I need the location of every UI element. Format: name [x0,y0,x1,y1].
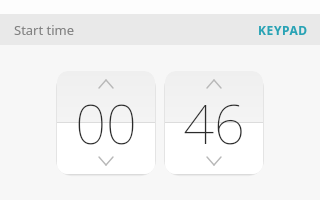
button[interactable]: Increase Minutes [201,75,227,93]
button[interactable]: Decrease Minutes [201,152,227,170]
button[interactable]: Increase Hours [93,75,119,93]
staticText: 00 [56,86,156,160]
staticText: KEYPAD [258,22,308,38]
button[interactable]: Decrease Hours [93,152,119,170]
button[interactable]: Increase Hours [56,70,156,175]
staticText: 46 [164,86,264,160]
staticText: Start time [14,21,75,39]
button[interactable]: Increase Minutes [164,70,264,175]
button[interactable]: KEYPAD [246,16,320,44]
